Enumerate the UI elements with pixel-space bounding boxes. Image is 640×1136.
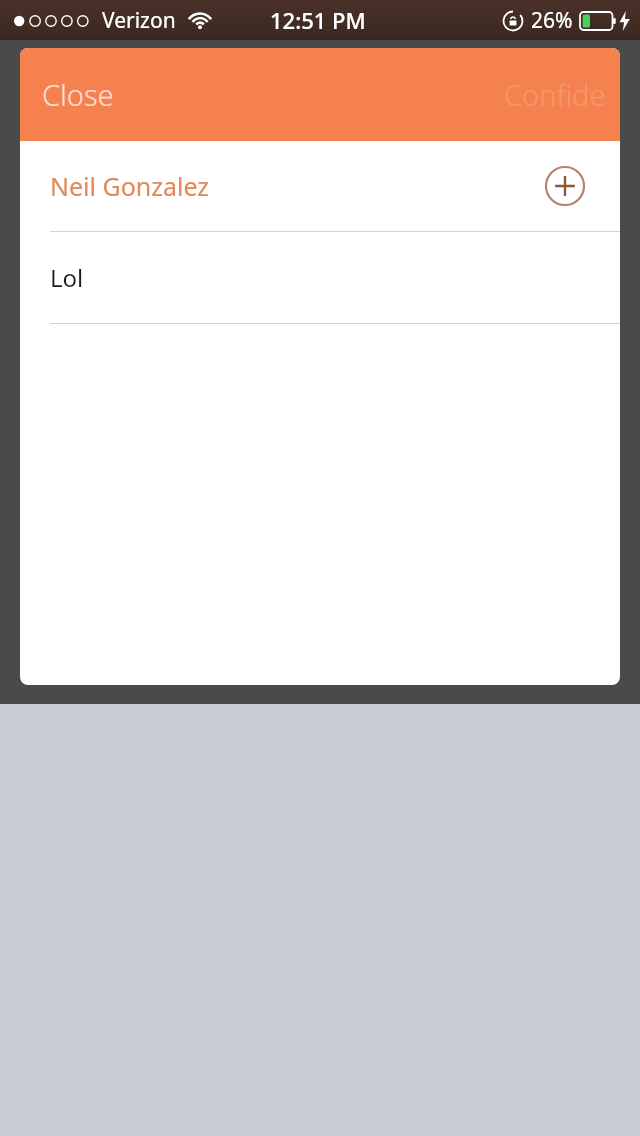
button[interactable]: Add recipient [544, 165, 586, 207]
staticText: 26% [531, 6, 573, 35]
staticText: 26% [531, 6, 573, 35]
button[interactable]: Neil Gonzalez [20, 141, 620, 231]
button[interactable]: Confide [490, 65, 620, 124]
staticText: Confide [504, 75, 606, 114]
staticText: Close [42, 75, 114, 114]
button[interactable]: Close [20, 65, 136, 124]
staticText: 12:51 PM [270, 5, 366, 35]
staticText: Verizon [102, 6, 176, 35]
staticText: 12:51 PM [270, 5, 366, 35]
button[interactable]: Lol [20, 232, 620, 323]
staticText: Neil Gonzalez [50, 169, 210, 203]
staticText: Lol [50, 261, 84, 294]
staticText: Verizon [102, 6, 176, 35]
